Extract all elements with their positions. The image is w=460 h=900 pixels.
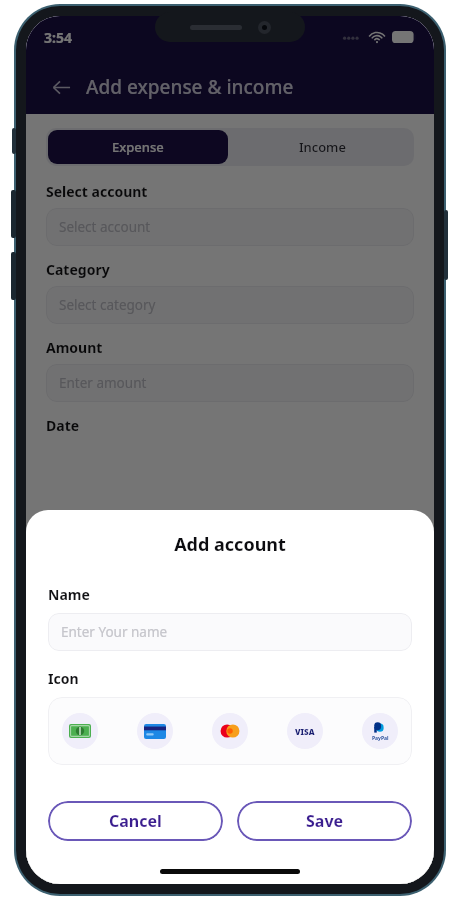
button[interactable]: Select category [46,286,414,324]
staticText: Enter amount [59,374,147,392]
button[interactable]: Account icon [212,713,248,749]
button[interactable]: Back [44,70,78,104]
staticText: Category [46,260,110,279]
staticText: Select category [59,296,156,314]
staticText: Enter Your name [61,623,168,641]
staticText: Add account [174,532,286,557]
button[interactable]: Expense [48,130,228,164]
staticText: Expense [112,138,164,156]
button[interactable]: Cancel [48,801,223,841]
button[interactable]: Enter amount [46,364,414,402]
staticText: Save [306,810,344,832]
button[interactable]: Enter Your name [48,613,412,651]
staticText: 3:54 [44,28,72,47]
staticText: Amount [46,338,103,357]
button[interactable]: Select account [46,208,414,246]
button[interactable]: Account icon [362,713,398,749]
button[interactable]: Income [230,128,414,166]
button[interactable]: Account icon [137,713,173,749]
staticText: Income [299,138,346,156]
button[interactable]: Account icon [287,713,323,749]
staticText: Icon [48,669,79,688]
staticText: Cancel [109,810,162,832]
button[interactable]: Account icon [62,713,98,749]
staticText: Select account [46,182,148,201]
staticText: Name [48,585,90,604]
staticText: PayPal [372,735,389,742]
staticText: VISA [295,726,315,737]
button[interactable]: Save [237,801,412,841]
staticText: Date [46,416,80,435]
staticText: Select account [59,218,151,236]
staticText: Add expense & income [86,74,294,100]
